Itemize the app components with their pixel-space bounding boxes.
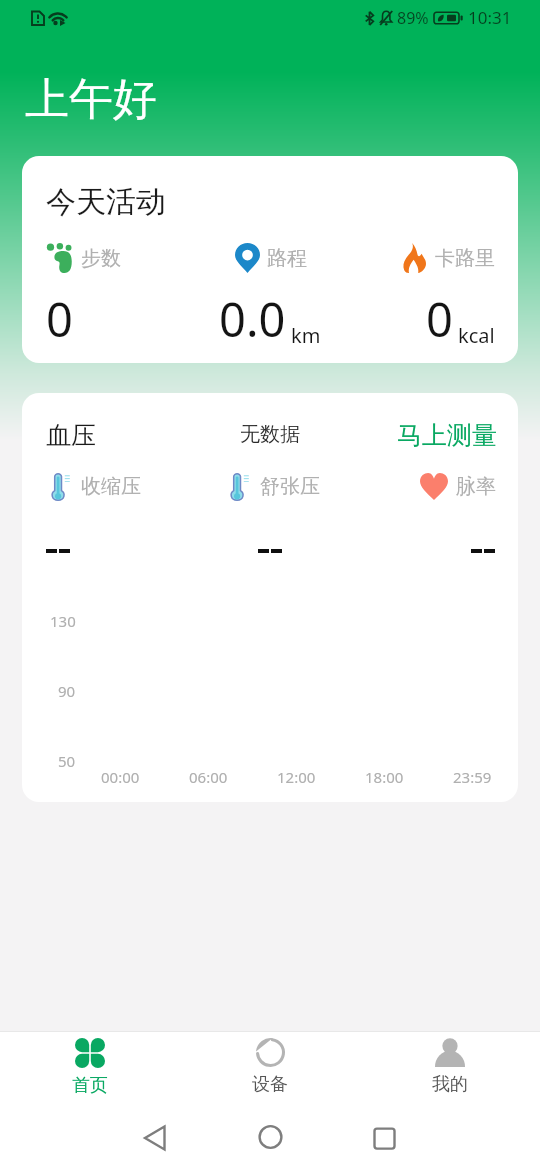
staticText: 0: [426, 287, 453, 351]
staticText: 卡路里: [435, 246, 495, 271]
button[interactable]: 设备: [180, 1032, 360, 1102]
staticText: 路程: [267, 246, 307, 271]
staticText: 收缩压: [81, 474, 141, 499]
staticText: kcal: [458, 322, 495, 349]
staticText: 06:00: [189, 767, 228, 787]
staticText: 90: [58, 681, 76, 701]
staticText: 我的: [432, 1073, 468, 1096]
staticText: 马上测量: [397, 420, 497, 451]
staticText: 设备: [252, 1073, 288, 1096]
button[interactable]: 今天活动: [22, 156, 518, 363]
other: 我的: [435, 1038, 465, 1067]
staticText: 步数: [81, 246, 121, 271]
staticText: 血压: [46, 420, 96, 451]
button[interactable]: 首页: [0, 1032, 180, 1102]
staticText: 0: [46, 287, 73, 351]
staticText: 无数据: [240, 422, 300, 447]
staticText: 23:59: [453, 767, 492, 787]
staticText: 130: [50, 611, 76, 631]
button[interactable]: 我的: [360, 1032, 540, 1102]
staticText: 今天活动: [46, 183, 166, 221]
staticText: 舒张压: [260, 474, 320, 499]
staticText: 89%: [397, 7, 429, 29]
staticText: 首页: [72, 1074, 108, 1097]
staticText: 50: [58, 751, 76, 771]
staticText: 上午好: [25, 72, 157, 127]
other: 设备: [256, 1038, 285, 1067]
staticText: 脉率: [456, 474, 496, 499]
staticText: 10:31: [468, 6, 512, 29]
staticText: 00:00: [101, 767, 140, 787]
button[interactable]: 马上测量: [397, 420, 497, 451]
staticText: km: [291, 322, 321, 349]
staticText: 18:00: [365, 767, 404, 787]
staticText: 0.0: [219, 287, 286, 351]
staticText: 12:00: [277, 767, 316, 787]
